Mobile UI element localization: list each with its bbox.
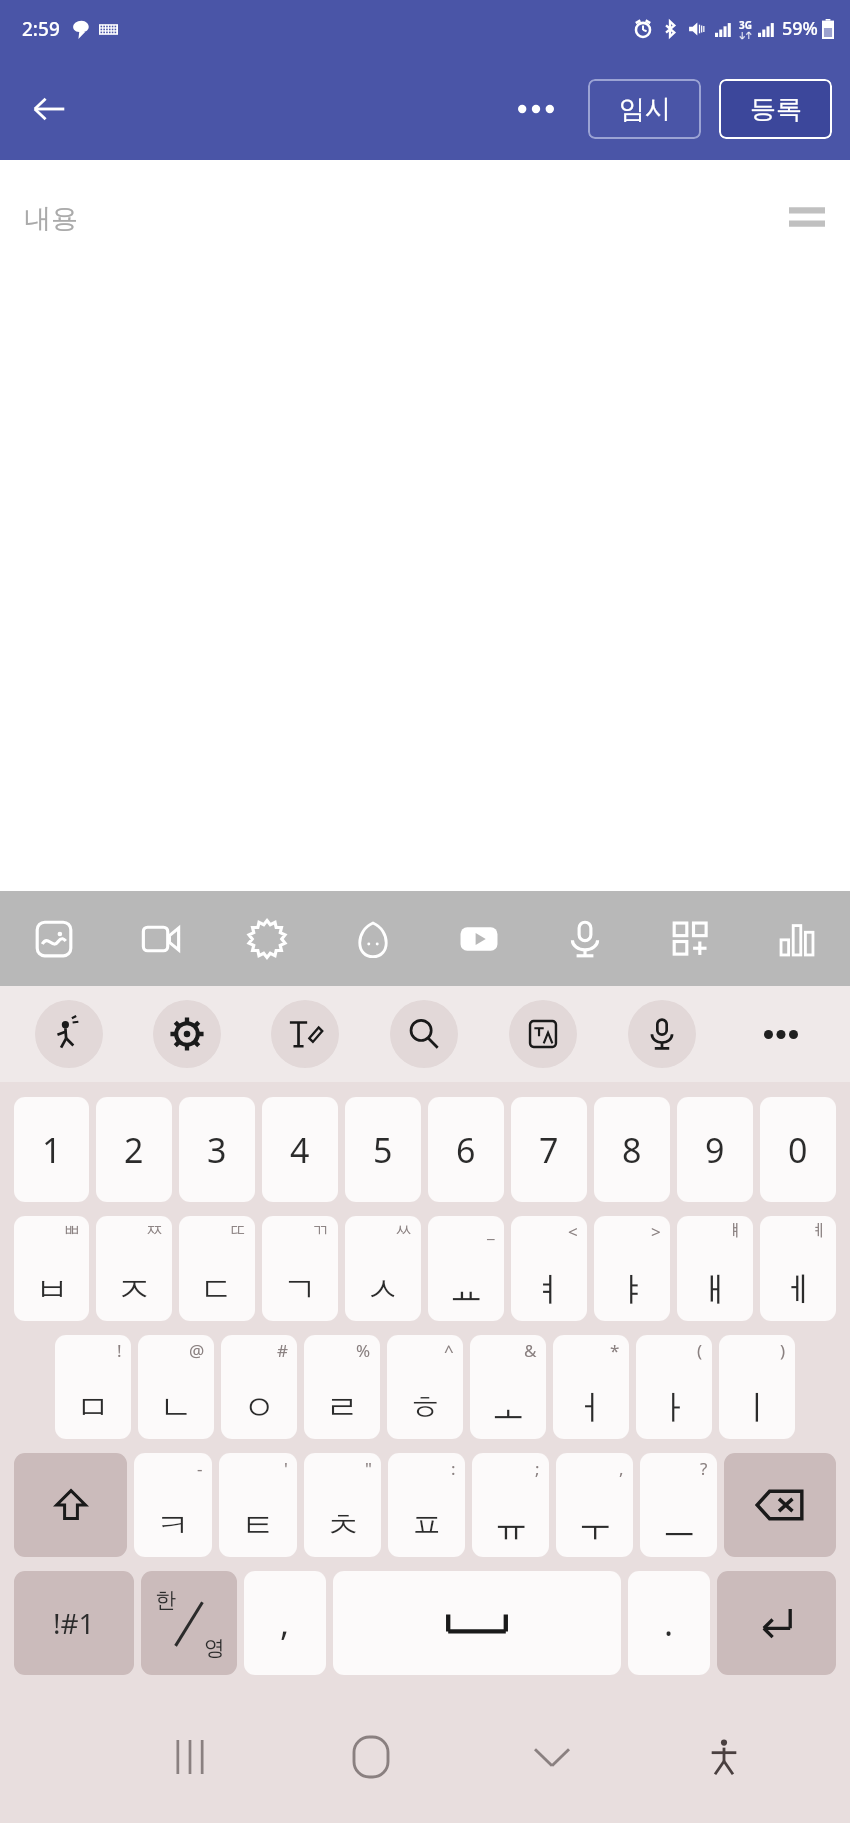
button[interactable]: 6 bbox=[428, 1097, 504, 1202]
button[interactable]: 0 bbox=[760, 1097, 836, 1202]
staticText: 2 bbox=[124, 1127, 144, 1173]
button[interactable]: ' bbox=[219, 1453, 297, 1557]
button[interactable]: Home bbox=[280, 1690, 461, 1823]
button[interactable]: YouTube bbox=[426, 891, 532, 986]
button[interactable]: " bbox=[304, 1453, 381, 1557]
staticText: ㅈ bbox=[117, 1268, 151, 1311]
button[interactable]: * bbox=[553, 1335, 629, 1439]
button[interactable]: _ bbox=[428, 1216, 504, 1321]
staticText: ㅐ bbox=[698, 1268, 732, 1311]
staticText: " bbox=[365, 1457, 372, 1480]
button[interactable]: ㄸ bbox=[179, 1216, 255, 1321]
button[interactable]: Sticker bbox=[320, 891, 426, 986]
staticText: ㅇ bbox=[242, 1386, 276, 1429]
button[interactable]: 등록 bbox=[719, 79, 832, 139]
button[interactable]: ㄲ bbox=[262, 1216, 338, 1321]
button[interactable]: 3 bbox=[179, 1097, 255, 1202]
button[interactable]: 2 bbox=[96, 1097, 172, 1202]
button[interactable]: ㅆ bbox=[345, 1216, 421, 1321]
staticText: 4 bbox=[290, 1127, 310, 1173]
button[interactable]: , bbox=[556, 1453, 633, 1557]
staticText: 영 bbox=[204, 1635, 225, 1661]
staticText: ㄷ bbox=[200, 1268, 234, 1311]
staticText: ㅂ bbox=[35, 1268, 69, 1311]
button[interactable]: 4 bbox=[262, 1097, 338, 1202]
button[interactable]: Translate bbox=[483, 1000, 602, 1068]
button[interactable]: Search bbox=[364, 1000, 483, 1068]
button[interactable]: ㅖ bbox=[760, 1216, 836, 1321]
button[interactable]: Settings bbox=[128, 1000, 246, 1068]
staticText: , bbox=[280, 1600, 290, 1646]
staticText: ㅗ bbox=[491, 1386, 525, 1429]
button[interactable]: Hide keyboard bbox=[461, 1690, 642, 1823]
button[interactable]: - bbox=[134, 1453, 212, 1557]
staticText: & bbox=[524, 1339, 537, 1362]
button[interactable]: > bbox=[594, 1216, 670, 1321]
button[interactable]: % bbox=[304, 1335, 380, 1439]
button[interactable]: ? bbox=[640, 1453, 717, 1557]
button[interactable]: ; bbox=[472, 1453, 549, 1557]
button[interactable]: 7 bbox=[511, 1097, 587, 1202]
button[interactable]: Enter bbox=[717, 1571, 836, 1675]
button[interactable]: Photo bbox=[0, 891, 107, 986]
button[interactable]: 8 bbox=[594, 1097, 670, 1202]
button[interactable]: ^ bbox=[387, 1335, 463, 1439]
button[interactable]: # bbox=[221, 1335, 297, 1439]
staticText: ㄱ bbox=[283, 1268, 317, 1311]
button[interactable]: 1 bbox=[14, 1097, 89, 1202]
button[interactable]: Back bbox=[22, 82, 76, 136]
button[interactable]: Video bbox=[107, 891, 214, 986]
button[interactable]: Accessibility bbox=[642, 1690, 805, 1823]
staticText: ㅅ bbox=[366, 1268, 400, 1311]
button[interactable]: ㅃ bbox=[14, 1216, 89, 1321]
button[interactable]: Backspace bbox=[724, 1453, 836, 1557]
staticText: 0 bbox=[788, 1127, 808, 1173]
staticText: 59% bbox=[782, 16, 818, 41]
button[interactable]: 5 bbox=[345, 1097, 421, 1202]
button[interactable]: More options bbox=[508, 81, 564, 137]
button[interactable]: Voice bbox=[532, 891, 638, 986]
button[interactable]: 9 bbox=[677, 1097, 753, 1202]
staticText: ㄴ bbox=[159, 1386, 193, 1429]
staticText: < bbox=[568, 1220, 578, 1243]
staticText: ' bbox=[284, 1457, 288, 1480]
staticText: 8 bbox=[622, 1127, 642, 1173]
button[interactable]: ) bbox=[719, 1335, 795, 1439]
staticText: 내용 bbox=[24, 202, 78, 236]
staticText: ㅖ bbox=[810, 1220, 827, 1241]
button[interactable]: Formatting bbox=[778, 188, 836, 246]
staticText: @ bbox=[189, 1339, 205, 1362]
staticText: ㄹ bbox=[325, 1386, 359, 1429]
button[interactable]: Apps bbox=[638, 891, 744, 986]
button[interactable]: Poll bbox=[744, 891, 850, 986]
button[interactable]: ㅒ bbox=[677, 1216, 753, 1321]
button[interactable]: Korean English toggle bbox=[141, 1571, 237, 1675]
staticText: 임시 bbox=[619, 93, 671, 126]
button[interactable]: Handwriting bbox=[246, 1000, 364, 1068]
button[interactable]: Space bbox=[333, 1571, 621, 1675]
staticText: ㅣ bbox=[740, 1386, 774, 1429]
staticText: ㅕ bbox=[532, 1268, 566, 1311]
button[interactable]: Emoji bbox=[10, 1000, 128, 1068]
button[interactable]: < bbox=[511, 1216, 587, 1321]
staticText: ㄸ bbox=[229, 1220, 246, 1241]
button[interactable]: @ bbox=[138, 1335, 214, 1439]
button[interactable]: 임시 bbox=[588, 79, 701, 139]
button[interactable]: !#1 bbox=[14, 1571, 134, 1675]
button[interactable]: GIF bbox=[214, 891, 320, 986]
button[interactable]: Recents bbox=[99, 1690, 280, 1823]
button[interactable]: Shift bbox=[14, 1453, 127, 1557]
staticText: 3G bbox=[739, 18, 752, 32]
button[interactable]: Voice input bbox=[602, 1000, 721, 1068]
button[interactable]: : bbox=[388, 1453, 465, 1557]
button[interactable]: . bbox=[628, 1571, 710, 1675]
button[interactable]: More bbox=[721, 1030, 840, 1039]
staticText: ㅋ bbox=[156, 1504, 190, 1547]
staticText: % bbox=[356, 1339, 371, 1362]
button[interactable]: & bbox=[470, 1335, 546, 1439]
button[interactable]: , bbox=[244, 1571, 326, 1675]
button[interactable]: ! bbox=[55, 1335, 131, 1439]
button[interactable]: ( bbox=[636, 1335, 712, 1439]
staticText: _ bbox=[487, 1220, 495, 1243]
button[interactable]: ㅉ bbox=[96, 1216, 172, 1321]
